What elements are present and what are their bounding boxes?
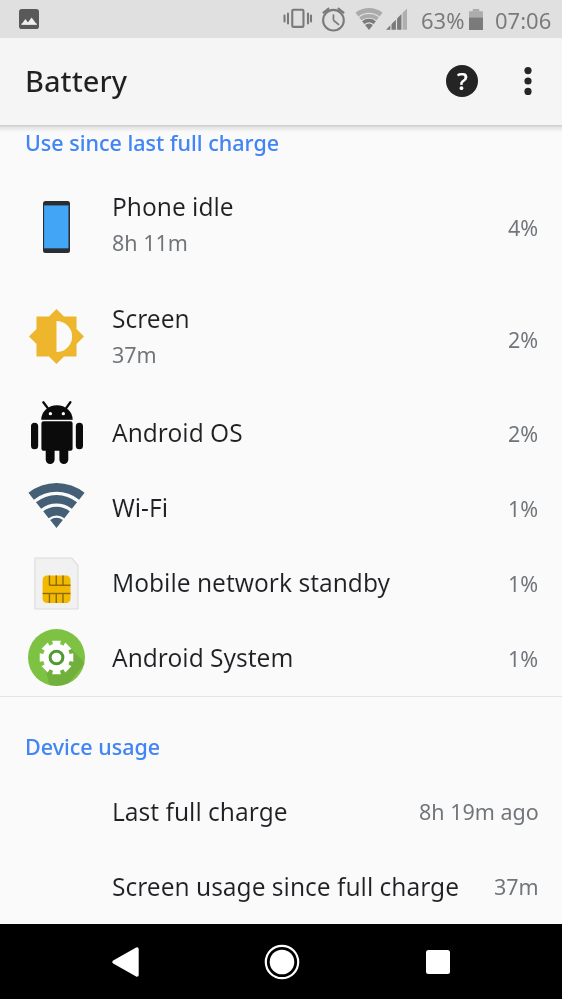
staticText: 63% (421, 5, 465, 35)
staticText: 37m (494, 872, 539, 901)
staticText: 4% (508, 213, 539, 242)
staticText: 37m (112, 340, 157, 369)
staticText: 1% (508, 569, 539, 598)
button[interactable]: Mobile network standby (0, 546, 562, 621)
staticText: Battery (25, 61, 127, 100)
button[interactable]: More options (496, 49, 560, 113)
button[interactable]: Phone idle (0, 171, 562, 283)
staticText: 07:06 (495, 5, 552, 35)
staticText: Phone idle (112, 190, 234, 223)
button[interactable]: Screen (0, 283, 562, 395)
button[interactable]: Screen usage since full charge (0, 849, 562, 924)
button[interactable]: Wi-Fi (0, 471, 562, 546)
button[interactable]: Home (254, 924, 309, 999)
staticText: 1% (508, 494, 539, 523)
staticText: Android System (112, 641, 294, 674)
button[interactable]: Android System (0, 621, 562, 696)
staticText: 1% (508, 644, 539, 673)
staticText: 8h 19m ago (419, 797, 539, 826)
staticText: Mobile network standby (112, 566, 391, 599)
button[interactable]: Back (98, 924, 153, 999)
staticText: Device usage (25, 732, 161, 761)
staticText: ? (457, 65, 468, 96)
staticText: 2% (508, 325, 539, 354)
staticText: Screen usage since full charge (112, 870, 459, 903)
staticText: 2% (508, 419, 539, 448)
staticText: Android OS (112, 416, 243, 449)
staticText: Wi-Fi (112, 491, 169, 524)
staticText: Last full charge (112, 795, 288, 828)
button[interactable]: Last full charge (0, 774, 562, 849)
staticText: 8h 11m (112, 228, 188, 257)
button[interactable]: Android OS (0, 395, 562, 471)
staticText: Use since last full charge (25, 128, 280, 157)
button[interactable]: Help (430, 49, 494, 113)
button[interactable]: Recents (410, 924, 465, 999)
staticText: Screen (112, 302, 190, 335)
